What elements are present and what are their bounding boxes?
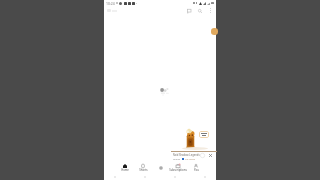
staticText: Home [121,168,129,172]
staticText: You [194,168,199,172]
button[interactable]: Ad info [199,152,206,159]
staticText: Install [173,157,181,160]
button[interactable]: Home [115,161,134,173]
button[interactable]: Search [196,7,203,14]
staticText: Subscriptions [169,168,187,172]
staticText: Shorts [139,168,148,172]
button[interactable]: You [187,161,205,173]
button[interactable]: Create [152,161,169,173]
button[interactable]: Promo [211,28,218,35]
button[interactable]: Home [107,9,117,12]
button[interactable]: Cast [185,7,192,14]
button[interactable]: Subscriptions [169,161,187,173]
staticText: 4.5 stars [185,157,195,160]
staticText: 10:24 [106,1,115,6]
staticText: Raid Shadow Legends [173,153,200,157]
button[interactable]: More options [207,7,214,14]
button[interactable]: Close ad [207,152,214,159]
button[interactable]: Shorts [134,161,152,173]
